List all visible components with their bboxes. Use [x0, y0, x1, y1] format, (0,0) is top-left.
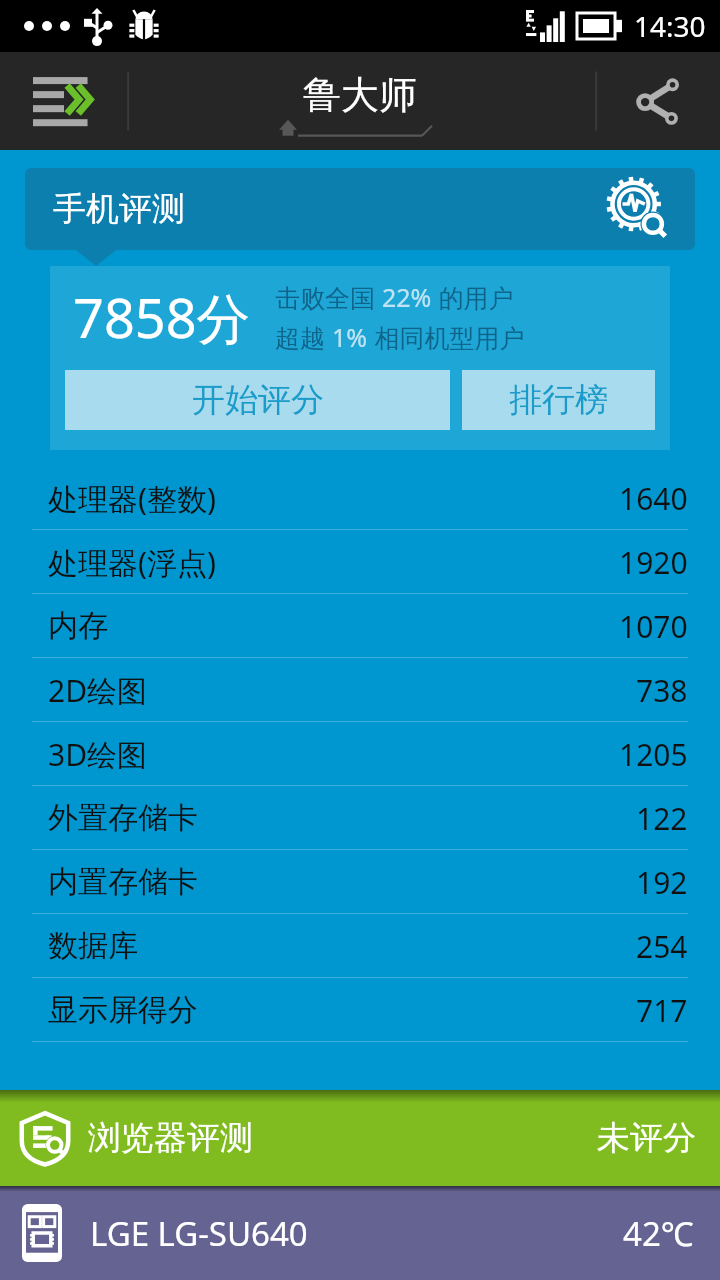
button[interactable]: 浏览器评测	[0, 1090, 720, 1186]
staticText: 2D绘图	[48, 670, 148, 711]
staticText: 1205	[619, 734, 688, 775]
staticText: 1%	[332, 320, 368, 354]
staticText: 22%	[382, 280, 432, 314]
button[interactable]: 手机评测	[25, 168, 695, 250]
staticText: 处理器(整数)	[48, 478, 216, 519]
staticText: LGE LG-SU640	[90, 1211, 308, 1256]
staticText: 击败全国	[275, 280, 382, 314]
staticText: 的用户	[432, 280, 514, 314]
staticText: 1640	[619, 478, 688, 519]
staticText: 浏览器评测	[88, 1117, 253, 1159]
button[interactable]: Share	[596, 52, 720, 150]
button[interactable]: 内存	[0, 594, 720, 658]
staticText: 254	[636, 926, 688, 967]
button[interactable]: 显示屏得分	[0, 978, 720, 1042]
staticText: 1920	[619, 542, 688, 583]
staticText: 738	[636, 670, 688, 711]
button[interactable]: Menu	[0, 52, 128, 150]
button[interactable]: 3D绘图	[0, 722, 720, 786]
staticText: 内存	[48, 607, 108, 645]
staticText: 相同机型用户	[368, 320, 525, 354]
button[interactable]: 内置存储卡	[0, 850, 720, 914]
staticText: 42℃	[623, 1211, 694, 1256]
staticText: 手机评测	[53, 188, 185, 230]
button[interactable]: 处理器(整数)	[0, 466, 720, 530]
staticText: 排行榜	[509, 379, 608, 421]
staticText: 处理器(浮点)	[48, 542, 216, 583]
staticText: 7858分	[73, 280, 251, 354]
staticText: 外置存储卡	[48, 799, 198, 837]
staticText: 显示屏得分	[48, 991, 198, 1029]
staticText: 超越	[275, 320, 332, 354]
staticText: 内置存储卡	[48, 863, 198, 901]
staticText: 3D绘图	[48, 734, 148, 775]
staticText: 1070	[619, 606, 688, 647]
staticText: 192	[636, 862, 688, 903]
staticText: 122	[636, 798, 688, 839]
staticText: 14:30	[634, 7, 706, 45]
button[interactable]: 外置存储卡	[0, 786, 720, 850]
staticText: 未评分	[597, 1117, 696, 1159]
button[interactable]: LGE LG-SU640	[0, 1186, 720, 1280]
staticText: 鲁大师	[303, 71, 417, 119]
staticText: 开始评分	[192, 379, 324, 421]
button[interactable]: 处理器(浮点)	[0, 530, 720, 594]
button[interactable]: 开始评分	[65, 370, 450, 430]
button[interactable]: 数据库	[0, 914, 720, 978]
staticText: 数据库	[48, 927, 138, 965]
button[interactable]: 排行榜	[462, 370, 655, 430]
staticText: 717	[636, 990, 688, 1031]
button[interactable]: 2D绘图	[0, 658, 720, 722]
